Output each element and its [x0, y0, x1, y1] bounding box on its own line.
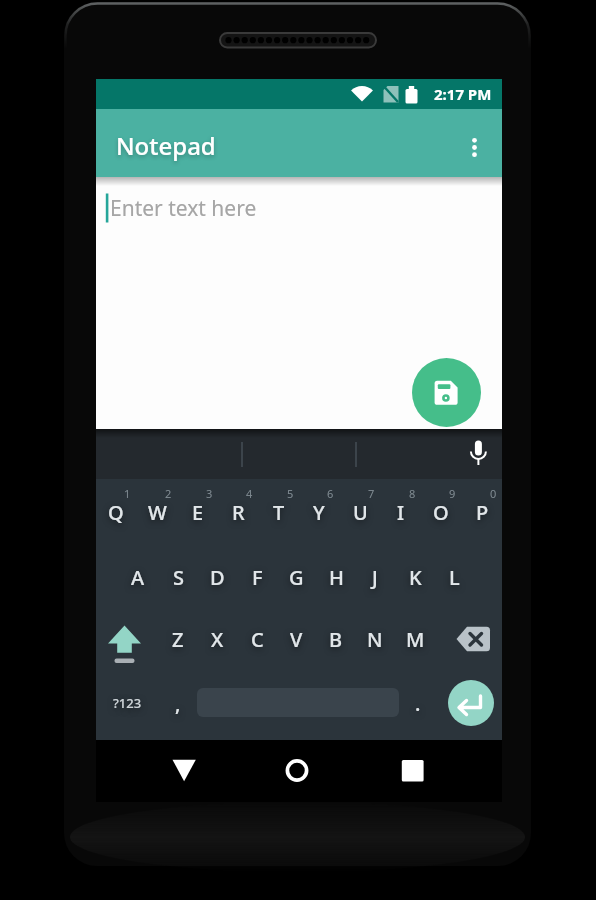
- staticText: P: [476, 499, 489, 526]
- button[interactable]: W: [137, 496, 177, 528]
- staticText: G: [289, 564, 304, 591]
- button[interactable]: V: [276, 623, 316, 655]
- staticText: Y: [313, 499, 325, 526]
- button[interactable]: P: [462, 496, 502, 528]
- button[interactable]: [448, 680, 494, 726]
- staticText: M: [406, 626, 425, 653]
- button[interactable]: [166, 752, 204, 790]
- staticText: Z: [172, 626, 184, 653]
- button[interactable]: J: [355, 561, 395, 593]
- staticText: ,: [175, 690, 181, 717]
- staticText: 2:17 PM: [434, 84, 492, 104]
- staticText: J: [372, 564, 378, 591]
- button[interactable]: K: [395, 561, 435, 593]
- staticText: 0: [490, 486, 497, 501]
- staticText: 1: [124, 486, 131, 501]
- staticText: C: [251, 626, 264, 653]
- staticText: U: [353, 499, 368, 526]
- staticText: S: [173, 564, 184, 591]
- button[interactable]: [96, 109, 502, 177]
- button[interactable]: Q: [96, 496, 136, 528]
- button[interactable]: [412, 358, 481, 427]
- button[interactable]: X: [197, 623, 237, 655]
- staticText: 5: [287, 486, 294, 501]
- button[interactable]: B: [316, 623, 356, 655]
- button[interactable]: Y: [299, 496, 339, 528]
- button[interactable]: N: [355, 623, 395, 655]
- staticText: D: [210, 564, 225, 591]
- staticText: F: [252, 564, 263, 591]
- button[interactable]: [96, 177, 502, 429]
- button[interactable]: A: [118, 561, 158, 593]
- staticText: I: [397, 499, 405, 526]
- staticText: 9: [449, 486, 456, 501]
- staticText: H: [329, 564, 344, 591]
- staticText: .: [415, 690, 421, 717]
- staticText: A: [131, 564, 145, 591]
- staticText: 3: [206, 486, 213, 501]
- staticText: Notepad: [116, 129, 216, 162]
- button[interactable]: C: [237, 623, 277, 655]
- staticText: V: [290, 626, 303, 653]
- staticText: ?123: [113, 694, 142, 712]
- button[interactable]: U: [340, 496, 380, 528]
- button[interactable]: [278, 752, 316, 790]
- staticText: W: [148, 499, 167, 526]
- button[interactable]: G: [276, 561, 316, 593]
- staticText: Enter text here: [110, 194, 257, 223]
- button[interactable]: O: [421, 496, 461, 528]
- button[interactable]: T: [259, 496, 299, 528]
- staticText: X: [211, 626, 224, 653]
- staticText: R: [232, 499, 245, 526]
- button[interactable]: S: [158, 561, 198, 593]
- staticText: T: [273, 499, 285, 526]
- button[interactable]: H: [316, 561, 356, 593]
- staticText: L: [449, 564, 460, 591]
- staticText: 2: [165, 486, 172, 501]
- staticText: 7: [368, 486, 375, 501]
- button[interactable]: M: [395, 623, 435, 655]
- button[interactable]: L: [434, 561, 474, 593]
- button[interactable]: I: [381, 496, 421, 528]
- staticText: E: [192, 499, 204, 526]
- button[interactable]: [104, 620, 146, 664]
- button[interactable]: Z: [158, 623, 198, 655]
- button[interactable]: ?123: [102, 689, 152, 717]
- button[interactable]: [452, 620, 496, 660]
- staticText: K: [409, 564, 422, 591]
- staticText: Q: [108, 499, 124, 526]
- button[interactable]: [462, 436, 496, 474]
- button[interactable]: .: [403, 688, 433, 718]
- button[interactable]: F: [237, 561, 277, 593]
- staticText: 8: [409, 486, 416, 501]
- button[interactable]: [462, 133, 488, 162]
- button[interactable]: [393, 752, 431, 790]
- button[interactable]: D: [197, 561, 237, 593]
- staticText: 6: [327, 486, 334, 501]
- button[interactable]: R: [218, 496, 258, 528]
- button[interactable]: ,: [163, 688, 193, 718]
- staticText: N: [367, 626, 383, 653]
- staticText: B: [329, 626, 343, 653]
- staticText: 4: [246, 486, 253, 501]
- button[interactable]: E: [178, 496, 218, 528]
- staticText: O: [433, 499, 449, 526]
